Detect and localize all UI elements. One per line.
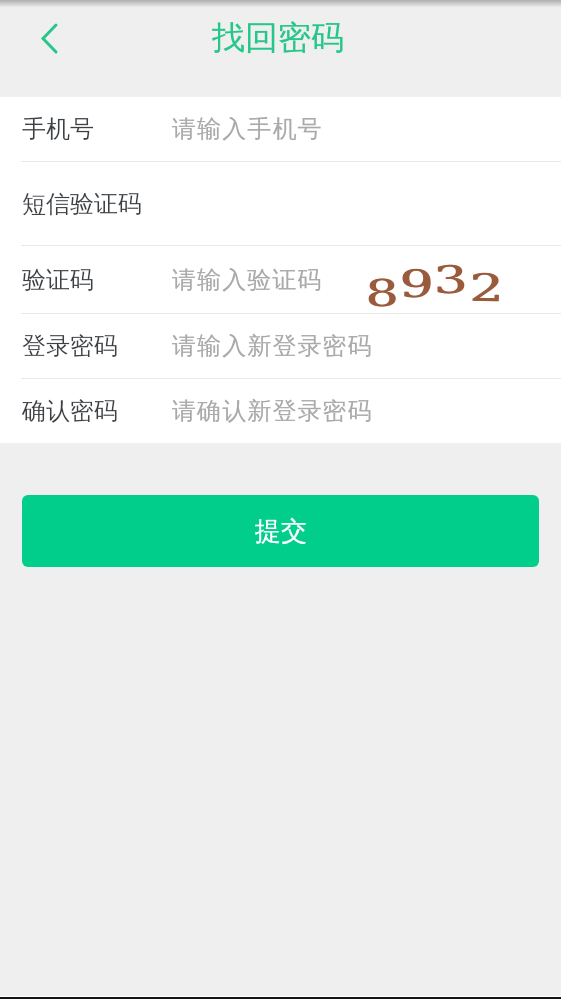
- staticText: 验证码: [22, 265, 94, 295]
- staticText: 请输入手机号: [172, 114, 323, 144]
- staticText: 8: [366, 272, 400, 315]
- button[interactable]: 手机号: [0, 97, 561, 161]
- staticText: 确认密码: [22, 396, 118, 426]
- staticText: 9: [400, 262, 436, 306]
- staticText: 提交: [255, 515, 307, 548]
- staticText: 8: [365, 272, 399, 315]
- staticText: 9: [399, 262, 434, 306]
- staticText: 请输入验证码: [172, 265, 323, 295]
- staticText: 手机号: [22, 114, 94, 144]
- staticText: 3: [432, 257, 469, 302]
- staticText: 登录密码: [22, 331, 118, 361]
- button[interactable]: 确认密码: [0, 379, 561, 443]
- button[interactable]: 登录密码: [0, 314, 561, 378]
- button[interactable]: Refresh captcha: [362, 254, 507, 306]
- button[interactable]: Back: [26, 15, 72, 61]
- button[interactable]: 提交: [22, 495, 539, 567]
- staticText: 短信验证码: [22, 189, 142, 219]
- button[interactable]: 短信验证码: [0, 162, 561, 245]
- button[interactable]: 验证码: [0, 246, 561, 313]
- staticText: 3: [434, 257, 470, 302]
- staticText: 请输入新登录密码: [172, 331, 373, 361]
- staticText: 请确认新登录密码: [172, 396, 373, 426]
- staticText: 2: [470, 266, 506, 310]
- staticText: 找回密码: [212, 17, 344, 59]
- staticText: 2: [469, 266, 504, 310]
